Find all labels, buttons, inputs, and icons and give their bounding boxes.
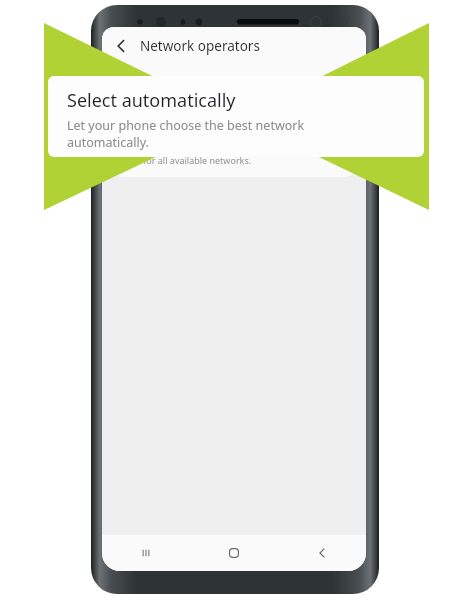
button[interactable]: Recents <box>102 535 190 571</box>
button[interactable]: Home <box>190 535 278 571</box>
button[interactable]: Back <box>102 27 140 65</box>
staticText: Select automatically <box>67 88 236 113</box>
button[interactable]: Scan for all available networks. <box>108 143 360 177</box>
staticText: Let your phone choose the best network a… <box>67 117 305 150</box>
staticText: Scan for all available networks. <box>121 154 252 166</box>
button[interactable]: Back <box>278 535 366 571</box>
button[interactable]: Select automatically <box>48 76 424 157</box>
button[interactable] <box>108 65 360 143</box>
staticText: Network operators <box>140 37 260 55</box>
